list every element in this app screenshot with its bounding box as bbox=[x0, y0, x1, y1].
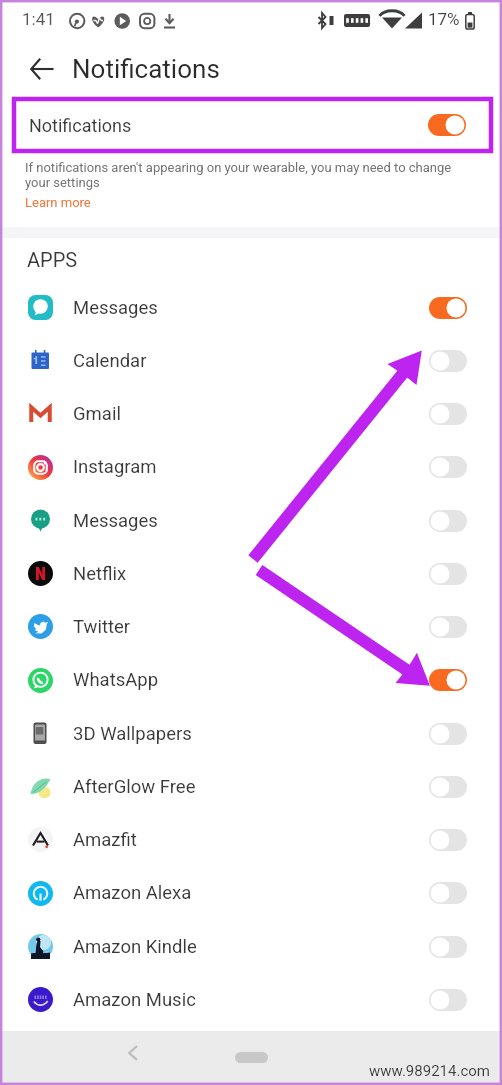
button[interactable]: Netflix bbox=[0, 547, 502, 600]
staticText: Notifications bbox=[72, 54, 220, 84]
button[interactable]: Amazon Kindle bbox=[0, 920, 502, 973]
staticText: Messages bbox=[73, 510, 158, 532]
button[interactable]: Toggle off bbox=[429, 510, 467, 532]
staticText: Calendar bbox=[73, 350, 147, 372]
staticText: Netflix bbox=[73, 563, 127, 585]
button[interactable]: Toggle off bbox=[429, 936, 467, 958]
button[interactable]: Toggle off bbox=[429, 616, 467, 638]
button[interactable]: Toggle off bbox=[429, 829, 467, 851]
button[interactable]: Learn more bbox=[25, 195, 91, 210]
staticText: 3D Wallpapers bbox=[73, 723, 192, 745]
button[interactable]: Toggle on bbox=[429, 669, 467, 691]
button[interactable]: Notifications bbox=[0, 97, 502, 153]
button[interactable]: Toggle on bbox=[428, 114, 466, 136]
button[interactable]: 3D Wallpapers bbox=[0, 707, 502, 760]
button[interactable]: Back bbox=[29, 57, 55, 81]
button[interactable]: Toggle on bbox=[429, 297, 467, 319]
staticText: Amazon Kindle bbox=[73, 936, 197, 958]
staticText: APPS bbox=[27, 248, 78, 271]
staticText: Amazon Music bbox=[73, 989, 196, 1011]
button[interactable]: WhatsApp bbox=[0, 653, 502, 707]
button[interactable]: Toggle off bbox=[429, 563, 467, 585]
button[interactable]: Messages bbox=[0, 494, 502, 547]
button[interactable]: Calendar bbox=[0, 334, 502, 387]
button[interactable]: Toggle off bbox=[429, 882, 467, 904]
staticText: www.989214.com bbox=[369, 1062, 490, 1080]
button[interactable]: Toggle off bbox=[429, 456, 467, 478]
staticText: 1:41 bbox=[22, 9, 55, 29]
staticText: WhatsApp bbox=[73, 669, 159, 691]
staticText: AfterGlow Free bbox=[73, 776, 196, 798]
button[interactable]: Twitter bbox=[0, 600, 502, 653]
button[interactable]: Toggle off bbox=[429, 776, 467, 798]
button[interactable]: Toggle off bbox=[429, 403, 467, 425]
button[interactable]: Instagram bbox=[0, 440, 502, 494]
staticText: Gmail bbox=[73, 403, 121, 425]
staticText: Twitter bbox=[73, 616, 131, 638]
button[interactable]: Amazon Music bbox=[0, 973, 502, 1026]
button[interactable]: Back bbox=[116, 1042, 150, 1064]
staticText: Messages bbox=[73, 297, 158, 319]
staticText: Amazon Alexa bbox=[73, 882, 192, 904]
staticText: If notifications aren't appearing on you… bbox=[25, 160, 478, 190]
staticText: 17% bbox=[428, 9, 460, 29]
button[interactable]: AfterGlow Free bbox=[0, 760, 502, 813]
staticText: Instagram bbox=[73, 456, 157, 478]
button[interactable]: Toggle off bbox=[429, 989, 467, 1011]
button[interactable]: Messages bbox=[0, 281, 502, 334]
button[interactable]: Home bbox=[235, 1052, 268, 1063]
button[interactable]: Amazon Alexa bbox=[0, 866, 502, 920]
button[interactable]: Gmail bbox=[0, 387, 502, 440]
button[interactable]: Amazfit bbox=[0, 813, 502, 866]
staticText: Learn more bbox=[25, 195, 91, 210]
button[interactable]: Toggle off bbox=[429, 723, 467, 745]
staticText: Amazfit bbox=[73, 829, 137, 851]
staticText: Notifications bbox=[29, 115, 132, 136]
button[interactable]: Toggle off bbox=[429, 350, 467, 372]
